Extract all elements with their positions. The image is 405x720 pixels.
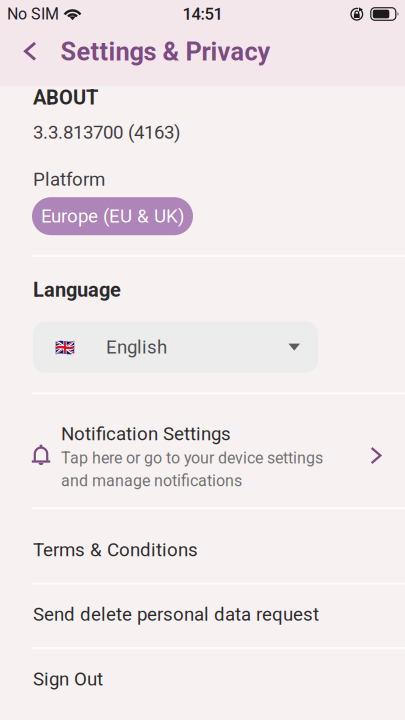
staticText: English: [106, 336, 167, 358]
staticText: 🇬🇧: [55, 338, 75, 357]
staticText: 3.3.813700 (4163): [33, 121, 180, 143]
button[interactable]: Send delete personal data request: [0, 585, 405, 647]
button[interactable]: Europe (EU & UK): [32, 197, 193, 235]
staticText: Send delete personal data request: [33, 603, 319, 625]
button[interactable]: Settings & Privacy: [47, 28, 270, 86]
staticText: Tap here or go to your device settings a…: [61, 449, 323, 490]
button[interactable]: Notification Settings: [0, 394, 405, 507]
staticText: Europe (EU & UK): [41, 205, 184, 227]
button[interactable]: 🇬🇧: [33, 322, 318, 373]
button[interactable]: Sign Out: [0, 649, 405, 719]
staticText: ABOUT: [33, 86, 98, 109]
staticText: 14:51: [182, 4, 222, 24]
staticText: Notification Settings: [61, 423, 231, 445]
button[interactable]: Terms & Conditions: [0, 509, 405, 583]
staticText: Language: [33, 278, 121, 302]
button[interactable]: Back: [0, 28, 47, 86]
staticText: Sign Out: [33, 668, 103, 690]
staticText: No SIM: [7, 5, 59, 23]
staticText: Settings & Privacy: [60, 37, 270, 67]
staticText: Platform: [33, 168, 105, 190]
staticText: Terms & Conditions: [33, 539, 198, 561]
